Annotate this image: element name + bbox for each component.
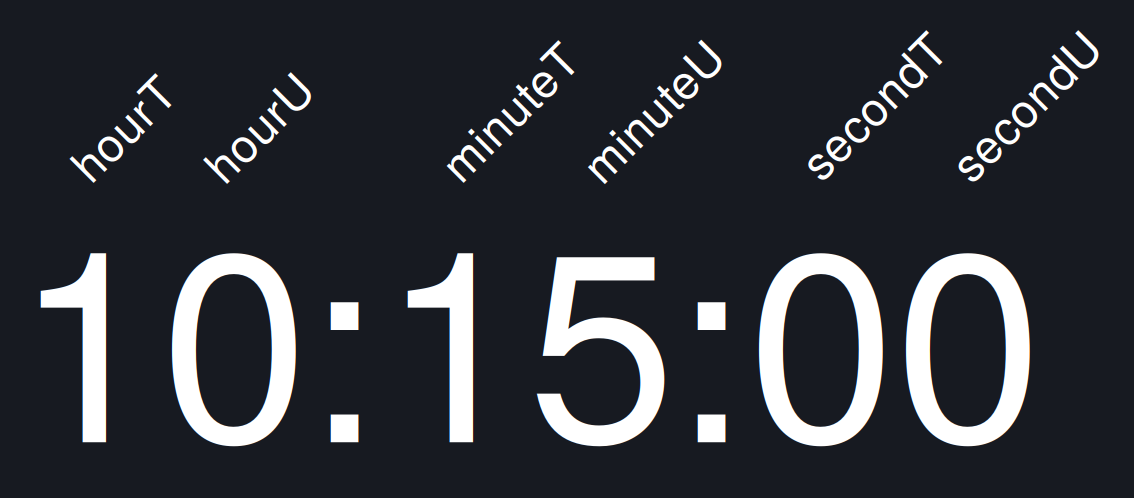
staticText: 10:15:00 <box>13 136 1042 498</box>
staticText: secondU <box>930 71 1118 137</box>
staticText: hourU <box>191 92 323 159</box>
staticText: hourT <box>58 93 185 160</box>
staticText: minuteT <box>422 77 594 143</box>
staticText: secondT <box>780 71 964 137</box>
staticText: minuteU <box>562 76 740 143</box>
